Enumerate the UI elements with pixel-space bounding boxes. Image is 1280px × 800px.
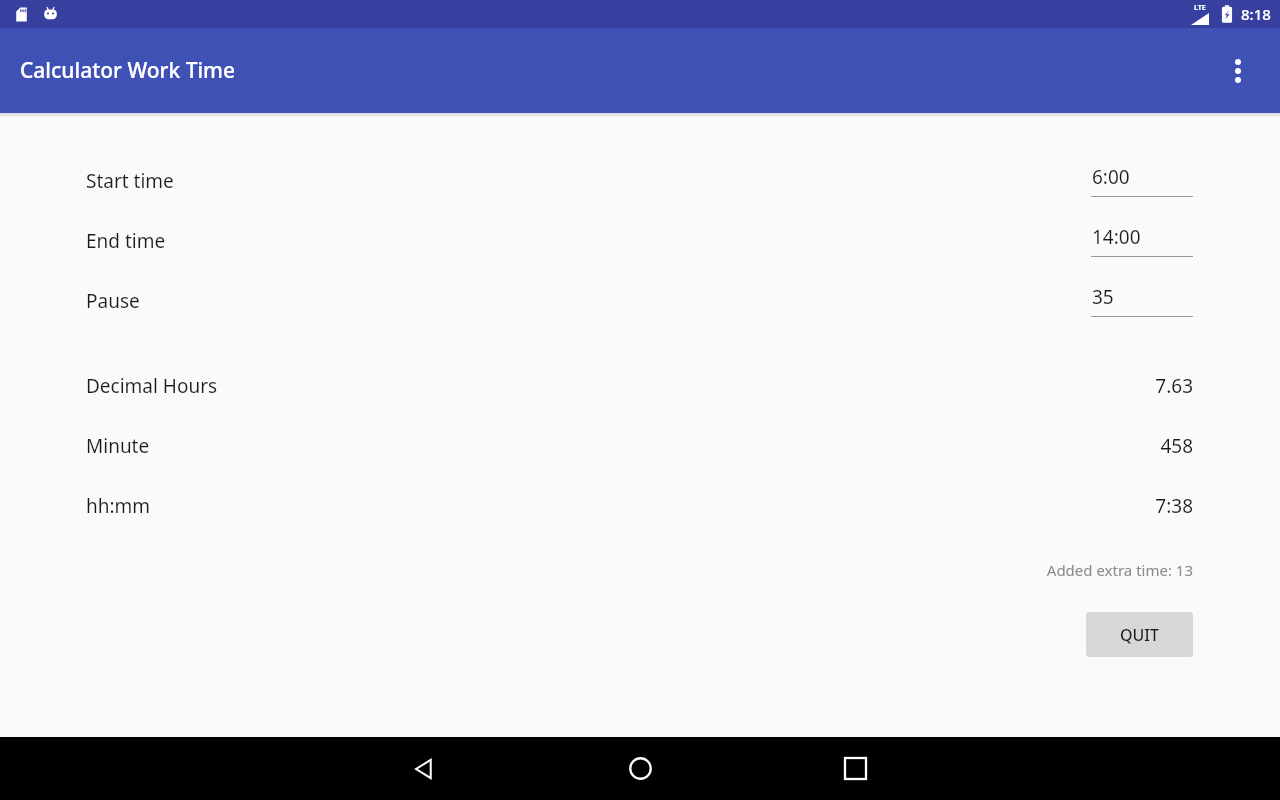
staticText: hh:mm	[86, 493, 1155, 519]
staticText: 8:18	[1241, 4, 1271, 24]
button[interactable]: 14:00	[1091, 224, 1193, 257]
staticText: Start time	[86, 168, 1091, 194]
staticText: 14:00	[1092, 224, 1193, 250]
staticText: Calculator Work Time	[20, 56, 236, 85]
button[interactable]: Home	[608, 737, 672, 800]
button[interactable]: Back	[392, 737, 456, 800]
button[interactable]: 6:00	[1091, 164, 1193, 197]
button[interactable]: QUIT	[1086, 612, 1193, 657]
staticText: 6:00	[1092, 164, 1193, 190]
staticText: Minute	[86, 433, 1160, 459]
staticText: QUIT	[1120, 624, 1160, 646]
staticText: End time	[86, 228, 1091, 254]
button[interactable]: Recent apps	[823, 737, 887, 800]
button[interactable]: More options	[1214, 47, 1262, 95]
staticText: 35	[1092, 284, 1193, 310]
staticText: 7.63	[1155, 373, 1193, 399]
staticText: LTE	[1194, 3, 1206, 13]
staticText: Decimal Hours	[86, 373, 1155, 399]
staticText: 7:38	[1155, 493, 1193, 519]
staticText: Added extra time: 13	[86, 560, 1193, 580]
button[interactable]: 35	[1091, 284, 1193, 317]
staticText: 458	[1160, 433, 1193, 459]
staticText: Pause	[86, 288, 1091, 314]
